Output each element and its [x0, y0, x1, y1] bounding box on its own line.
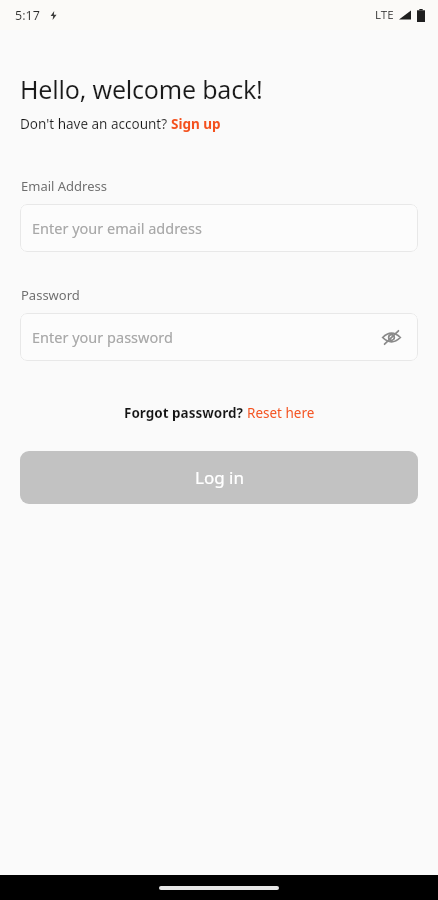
- staticText: Enter your password: [32, 327, 173, 347]
- button[interactable]: Sign up: [171, 115, 221, 133]
- button[interactable]: Enter your password: [20, 313, 418, 361]
- staticText: Log in: [195, 466, 244, 489]
- staticText: Hello, welcome back!: [20, 72, 263, 106]
- staticText: 5:17: [15, 7, 40, 24]
- staticText: LTE: [375, 7, 394, 23]
- button[interactable]: Show password: [376, 322, 406, 352]
- button[interactable]: Log in: [20, 451, 418, 504]
- staticText: Email Address: [21, 177, 107, 195]
- staticText: Don't have an account?: [20, 115, 171, 133]
- button[interactable]: Enter your email address: [20, 204, 418, 252]
- staticText: Password: [21, 286, 80, 304]
- button[interactable]: Reset here: [247, 404, 315, 422]
- staticText: Enter your email address: [32, 218, 202, 238]
- staticText: Forgot password?: [124, 404, 247, 422]
